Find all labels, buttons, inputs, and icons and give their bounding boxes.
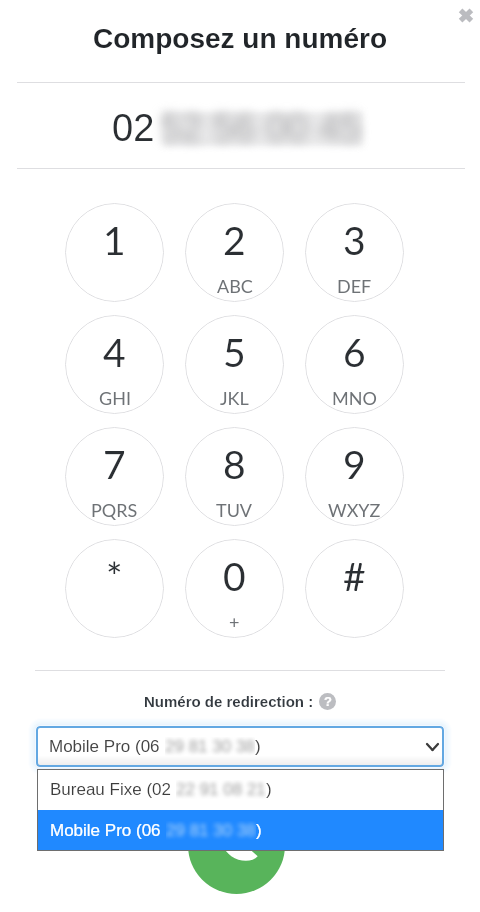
staticText: 6: [343, 329, 366, 376]
staticText: 22 91 08 21: [176, 780, 266, 799]
button[interactable]: Bureau Fixe (02: [37, 769, 444, 810]
staticText: #: [343, 553, 366, 600]
staticText: MNO: [332, 387, 377, 409]
button[interactable]: 9: [305, 427, 404, 526]
staticText: 2: [223, 217, 246, 264]
button[interactable]: 4: [65, 315, 164, 414]
button[interactable]: 6: [305, 315, 404, 414]
button[interactable]: Mobile Pro (06: [37, 810, 444, 851]
staticText: 02: [112, 107, 155, 149]
button[interactable]: 2: [185, 203, 284, 302]
staticText: 29 81 30 38: [166, 821, 256, 840]
staticText: JKL: [220, 387, 249, 409]
staticText: Composez un numéro: [93, 23, 388, 54]
button[interactable]: Appeler: [188, 797, 285, 894]
staticText: ?: [324, 694, 332, 709]
staticText: 52 56 00 45: [160, 107, 361, 149]
button[interactable]: Aide: [319, 693, 336, 710]
button[interactable]: 1: [65, 203, 164, 302]
staticText: Mobile Pro (06: [49, 737, 165, 756]
staticText: 8: [223, 441, 246, 488]
staticText: Mobile Pro (06: [50, 821, 166, 840]
button[interactable]: 7: [65, 427, 164, 526]
staticText: 4: [103, 329, 126, 376]
staticText: Numéro de redirection :: [144, 693, 314, 710]
staticText: *: [106, 553, 123, 600]
button[interactable]: 8: [185, 427, 284, 526]
staticText: ABC: [217, 275, 253, 297]
staticText: 29 81 30 38: [165, 737, 255, 756]
button[interactable]: #: [305, 539, 404, 638]
button[interactable]: Fermer: [450, 0, 480, 31]
staticText: ): [266, 780, 272, 799]
staticText: ): [256, 821, 262, 840]
button[interactable]: Mobile Pro (06: [36, 726, 444, 767]
staticText: Bureau Fixe (02: [50, 780, 176, 799]
button[interactable]: 5: [185, 315, 284, 414]
staticText: 0: [223, 553, 246, 600]
staticText: ): [255, 737, 261, 756]
staticText: 3: [343, 217, 366, 264]
button[interactable]: *: [65, 539, 164, 638]
staticText: PQRS: [91, 499, 138, 521]
staticText: 9: [343, 441, 366, 488]
staticText: WXYZ: [328, 499, 381, 521]
staticText: 7: [103, 441, 126, 488]
staticText: 5: [223, 329, 246, 376]
staticText: 1: [103, 217, 126, 264]
staticText: TUV: [216, 499, 253, 521]
button[interactable]: 0: [185, 539, 284, 638]
button[interactable]: 3: [305, 203, 404, 302]
staticText: +: [229, 611, 240, 633]
staticText: DEF: [337, 275, 372, 297]
staticText: GHI: [99, 387, 131, 409]
